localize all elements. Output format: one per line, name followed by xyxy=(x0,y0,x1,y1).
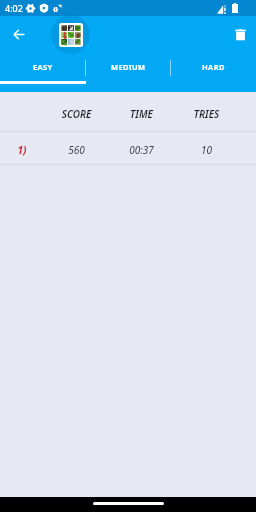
button[interactable]: 1) xyxy=(0,132,256,165)
staticText: SCORE xyxy=(44,107,109,121)
button[interactable]: Back xyxy=(7,22,31,46)
staticText: 1) xyxy=(0,143,44,157)
staticText: 00:37 xyxy=(109,143,174,157)
button[interactable]: HARD xyxy=(171,57,256,92)
staticText: TRIES xyxy=(174,107,239,121)
staticText: 4:02 xyxy=(5,2,23,14)
staticText: TIME xyxy=(109,107,174,121)
button[interactable]: Delete xyxy=(228,23,252,47)
button[interactable]: App icon xyxy=(51,15,90,54)
staticText: EASY xyxy=(33,62,53,72)
staticText: 10 xyxy=(174,143,239,157)
staticText: MEDIUM xyxy=(111,62,146,72)
button[interactable]: EASY xyxy=(0,57,86,92)
staticText: 560 xyxy=(44,143,109,157)
button[interactable]: MEDIUM xyxy=(86,57,171,92)
staticText: HARD xyxy=(202,62,225,72)
